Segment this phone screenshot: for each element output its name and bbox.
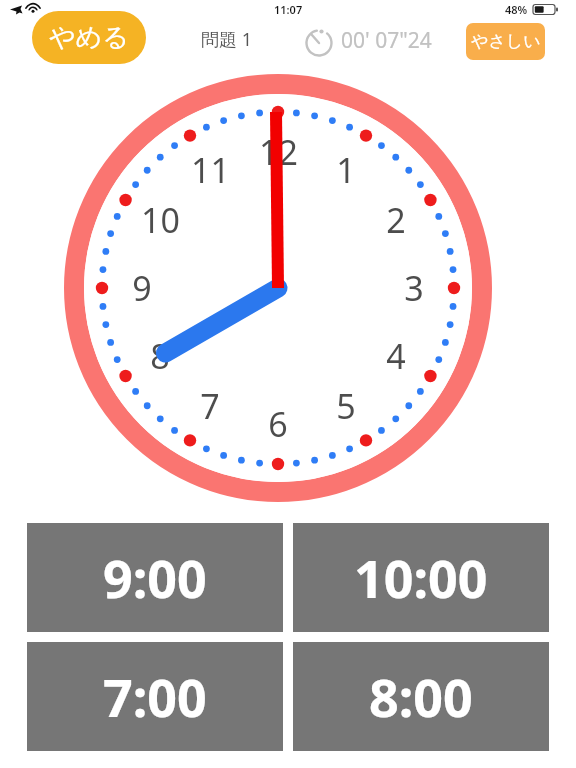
staticText: 9:00 bbox=[103, 542, 207, 613]
button[interactable]: 8:00 bbox=[293, 642, 549, 751]
staticText: 問題 1 bbox=[201, 27, 252, 52]
button[interactable]: 9:00 bbox=[27, 523, 283, 632]
staticText: 4 bbox=[386, 333, 406, 379]
staticText: 1 bbox=[336, 147, 356, 193]
button[interactable]: やさしい bbox=[466, 23, 545, 60]
staticText: 10:00 bbox=[354, 542, 488, 613]
staticText: 10 bbox=[141, 197, 180, 243]
staticText: やめる bbox=[49, 21, 129, 54]
staticText: 11 bbox=[191, 147, 230, 193]
button[interactable]: 10:00 bbox=[293, 523, 549, 632]
staticText: 3 bbox=[404, 265, 424, 311]
staticText: 2 bbox=[386, 197, 406, 243]
staticText: やさしい bbox=[471, 31, 541, 52]
staticText: 8 bbox=[150, 333, 170, 379]
staticText: 8:00 bbox=[369, 661, 473, 732]
staticText: 11:07 bbox=[274, 2, 303, 17]
staticText: 12 bbox=[259, 129, 298, 175]
button[interactable]: 7:00 bbox=[27, 642, 283, 751]
staticText: 7:00 bbox=[103, 661, 207, 732]
staticText: 9 bbox=[132, 265, 152, 311]
staticText: 7 bbox=[200, 383, 220, 429]
staticText: 48% bbox=[505, 2, 528, 17]
staticText: 6 bbox=[268, 401, 288, 447]
staticText: 5 bbox=[336, 383, 356, 429]
button[interactable]: やめる bbox=[32, 11, 146, 64]
staticText: 00' 07"24 bbox=[341, 26, 432, 55]
